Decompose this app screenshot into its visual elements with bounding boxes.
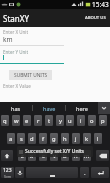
staticText: k — [85, 135, 89, 143]
staticText: 15:43 — [92, 0, 109, 9]
button[interactable]: Voice input — [15, 167, 24, 178]
button[interactable]: Enter — [91, 167, 109, 178]
staticText: i — [80, 117, 82, 125]
staticText: SUBMIT UNITS — [14, 72, 48, 79]
staticText: has — [11, 105, 21, 112]
staticText: g — [52, 135, 56, 143]
button[interactable]: Backspace — [96, 150, 109, 161]
staticText: e — [25, 117, 29, 125]
staticText: StanXY — [3, 13, 29, 24]
staticText: x — [30, 152, 34, 160]
button[interactable]: k — [83, 133, 91, 144]
button[interactable]: s — [17, 133, 25, 144]
button[interactable]: SUBMIT UNITS — [9, 70, 52, 80]
staticText: Successfully set X/Y Units — [25, 148, 84, 155]
button[interactable]: a — [7, 133, 15, 144]
button[interactable]: w — [12, 115, 20, 126]
staticText: a — [9, 135, 13, 143]
staticText: 123 — [3, 167, 12, 174]
staticText: km — [3, 35, 13, 44]
button[interactable]: y — [56, 115, 64, 126]
staticText: z — [21, 152, 24, 160]
staticText: o — [90, 117, 94, 125]
staticText: have — [43, 105, 56, 112]
button[interactable]: has — [0, 102, 32, 114]
button[interactable]: r — [34, 115, 42, 126]
staticText: h — [63, 135, 67, 143]
staticText: r — [37, 117, 40, 125]
button[interactable]: u — [66, 115, 74, 126]
staticText: u — [68, 117, 72, 125]
button[interactable]: f — [39, 133, 47, 144]
button[interactable]: v — [50, 150, 58, 161]
button[interactable]: d — [28, 133, 36, 144]
staticText: Enter X Unit — [3, 29, 29, 35]
button[interactable]: x — [28, 150, 36, 161]
button[interactable]: n — [72, 150, 80, 161]
staticText: p — [101, 117, 105, 125]
staticText: f — [42, 135, 44, 143]
button[interactable]: o — [88, 115, 96, 126]
button[interactable]: z — [18, 150, 26, 161]
staticText: y — [59, 117, 62, 125]
staticText: t — [48, 117, 51, 125]
staticText: d — [30, 135, 34, 143]
button[interactable]: 123 — [1, 167, 14, 178]
button[interactable]: q — [1, 115, 9, 126]
button[interactable]: i — [77, 115, 85, 126]
staticText: n — [74, 152, 78, 160]
button[interactable]: More suggestions — [98, 102, 110, 114]
staticText: ABOUT US — [85, 15, 106, 21]
staticText: w — [14, 117, 19, 125]
button[interactable]: b — [61, 150, 69, 161]
button[interactable]: l — [94, 133, 102, 144]
staticText: here — [76, 105, 88, 112]
button[interactable]: p — [99, 115, 107, 126]
staticText: Enter Y Unit — [3, 49, 29, 55]
staticText: s — [20, 135, 23, 143]
staticText: m — [84, 152, 90, 160]
button[interactable]: have — [33, 102, 65, 114]
button[interactable]: g — [50, 133, 58, 144]
button[interactable]: Shift — [1, 150, 13, 161]
button[interactable]: c — [39, 150, 47, 161]
button[interactable]: m — [83, 150, 91, 161]
button[interactable]: . — [80, 167, 89, 178]
staticText: q — [3, 117, 7, 125]
staticText: b — [63, 152, 67, 160]
button[interactable]: t — [45, 115, 53, 126]
staticText: . — [84, 169, 86, 177]
staticText: v — [53, 152, 56, 160]
staticText: l — [97, 135, 99, 143]
staticText: c — [42, 152, 45, 160]
button[interactable]: e — [23, 115, 31, 126]
staticText: j — [75, 135, 77, 143]
button[interactable]: j — [72, 133, 80, 144]
button[interactable]: ABOUT US — [81, 10, 110, 26]
button[interactable]: Space — [26, 167, 78, 178]
staticText: Sym — [4, 174, 12, 178]
button[interactable]: h — [61, 133, 69, 144]
staticText: Enter X Value — [3, 83, 31, 89]
button[interactable]: here — [66, 102, 98, 114]
